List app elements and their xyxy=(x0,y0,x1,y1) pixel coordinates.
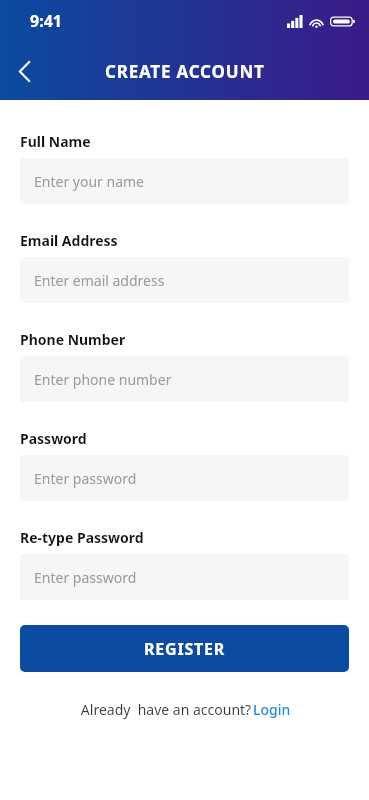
button[interactable]: Enter your name xyxy=(20,158,349,204)
button[interactable]: Enter password xyxy=(20,554,349,600)
button[interactable]: REGISTER xyxy=(20,625,349,672)
staticText: 9:41 xyxy=(30,10,62,32)
button[interactable]: Enter phone number xyxy=(20,356,349,402)
button[interactable]: Back xyxy=(0,47,48,95)
staticText: Login xyxy=(253,700,291,719)
staticText: REGISTER xyxy=(144,638,226,660)
staticText: Email Address xyxy=(20,231,118,250)
staticText: Already have an account? xyxy=(79,700,253,719)
staticText: Enter your name xyxy=(34,172,144,191)
staticText: Phone Number xyxy=(20,330,126,349)
staticText: Enter password xyxy=(34,568,137,587)
staticText: Enter password xyxy=(34,469,137,488)
button[interactable]: Enter password xyxy=(20,455,349,501)
staticText: Enter email address xyxy=(34,271,165,290)
staticText: Enter phone number xyxy=(34,370,172,389)
button[interactable]: Enter email address xyxy=(20,257,349,303)
staticText: Full Name xyxy=(20,132,91,151)
staticText: Password xyxy=(20,429,87,448)
button[interactable]: Login xyxy=(253,700,291,719)
staticText: CREATE ACCOUNT xyxy=(105,60,265,83)
staticText: Re-type Password xyxy=(20,528,144,547)
